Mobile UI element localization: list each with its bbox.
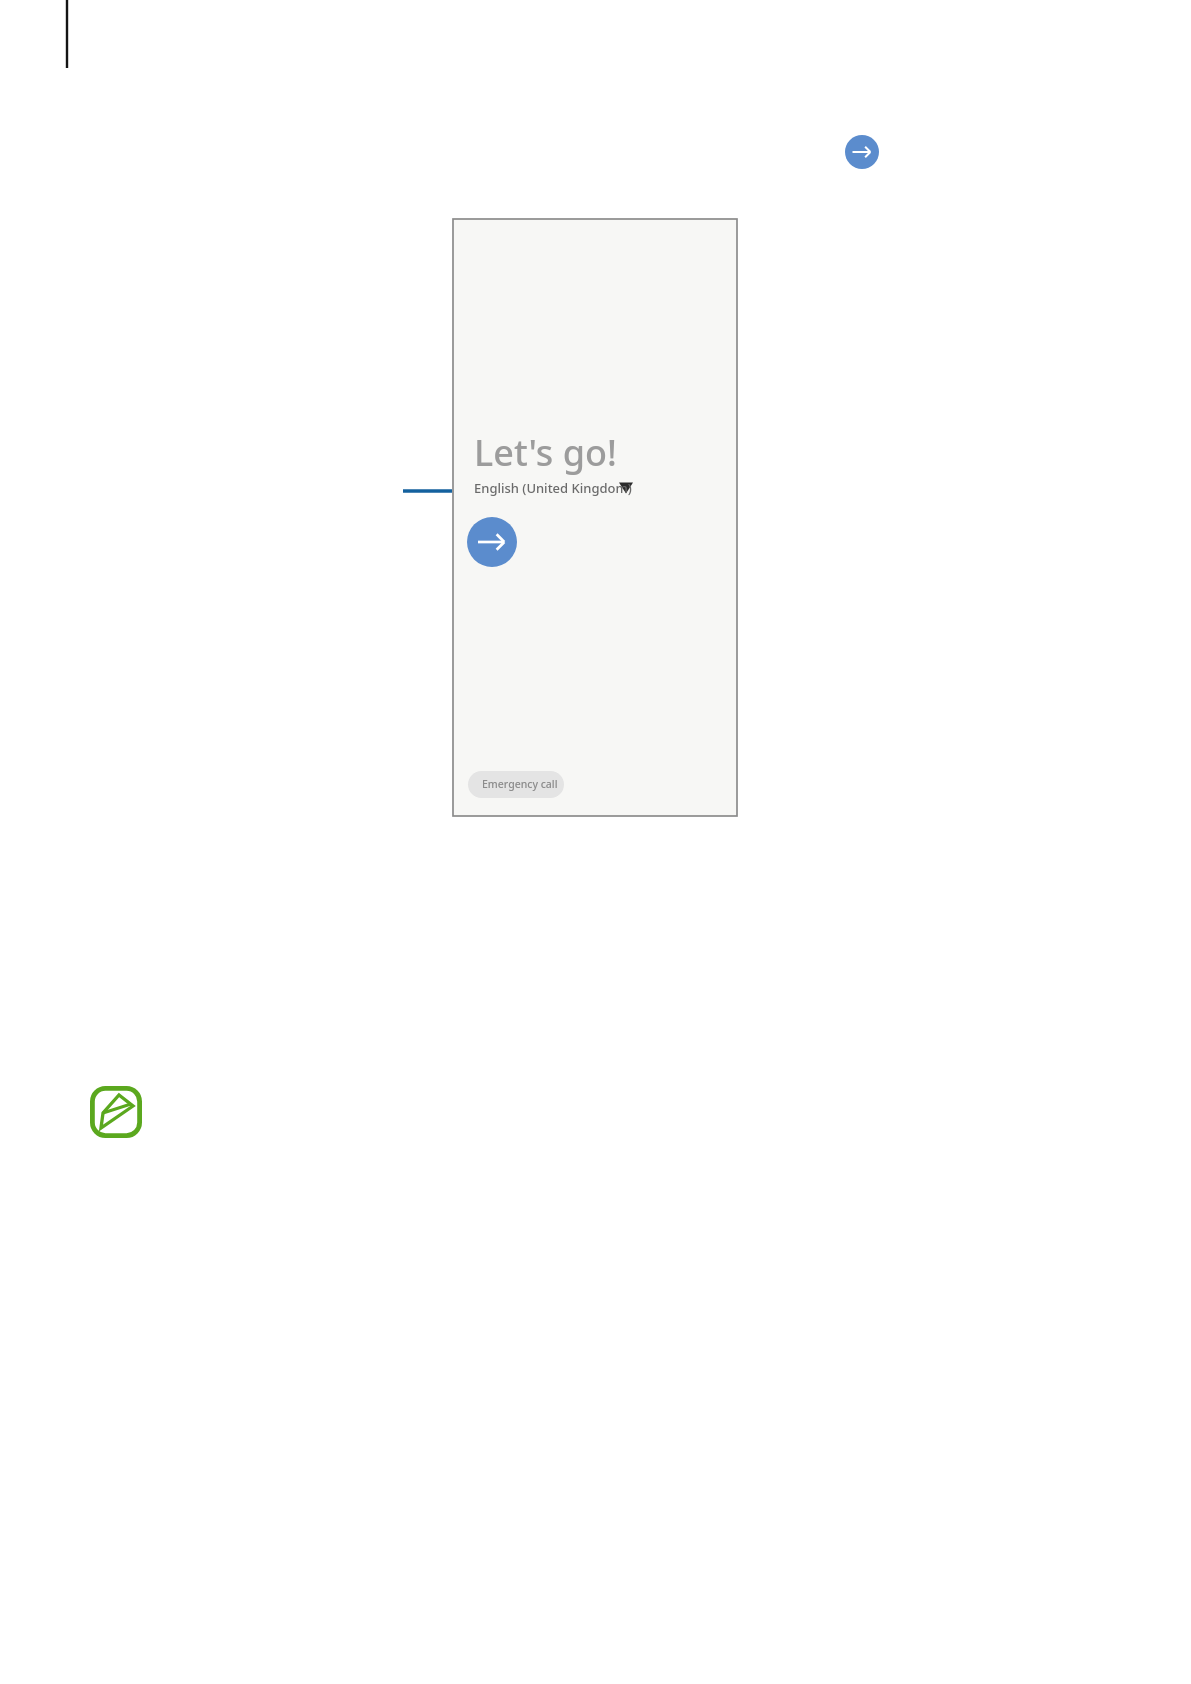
button[interactable]: English (United Kingdom) <box>474 479 634 499</box>
button[interactable]: Emergency call <box>468 771 564 798</box>
staticText: English (United Kingdom) <box>474 479 632 497</box>
button[interactable]: Next <box>845 135 879 169</box>
staticText: Let's go! <box>474 428 617 477</box>
staticText: Emergency call <box>482 777 558 791</box>
button[interactable]: Continue <box>467 517 517 567</box>
